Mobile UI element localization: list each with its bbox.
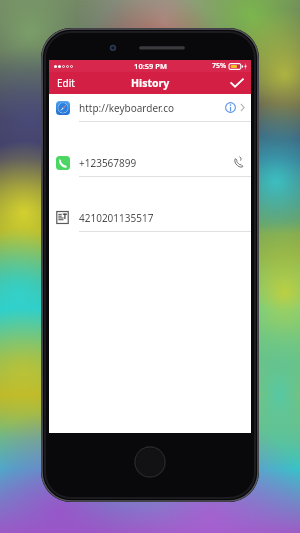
button[interactable]: Edit xyxy=(49,72,83,94)
button[interactable]: More info xyxy=(225,102,236,113)
button[interactable]: http://keyboarder.co xyxy=(49,94,251,122)
staticText: History xyxy=(131,76,170,90)
staticText: 10:59 PM xyxy=(134,61,167,71)
staticText: 4210201135517 xyxy=(79,211,154,225)
button[interactable]: Done xyxy=(223,72,251,94)
button[interactable]: Call xyxy=(232,156,245,169)
staticText: +123567899 xyxy=(79,156,137,170)
button[interactable]: 4210201135517 xyxy=(49,204,251,232)
staticText: 75% xyxy=(212,61,227,71)
staticText: http://keyboarder.co xyxy=(79,101,175,115)
button[interactable]: +123567899 xyxy=(49,149,251,177)
staticText: Edit xyxy=(57,76,75,90)
